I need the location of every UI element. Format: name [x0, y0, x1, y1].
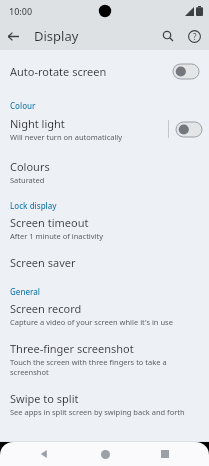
button[interactable]: Search — [155, 23, 181, 49]
staticText: Capture a video of your screen while it'… — [10, 317, 173, 327]
staticText: Swipe to split — [10, 391, 79, 406]
staticText: Saturated — [10, 175, 45, 185]
button[interactable]: Screen saver — [0, 253, 209, 272]
staticText: 10:00 — [9, 5, 33, 17]
staticText: ? — [193, 31, 197, 42]
staticText: Will never turn on automatically — [10, 132, 123, 142]
button[interactable]: Swipe to split — [0, 389, 209, 419]
staticText: Screen record — [10, 301, 82, 316]
button[interactable]: Help — [181, 23, 207, 49]
staticText: Night light — [10, 116, 65, 131]
button[interactable]: Screen timeout — [0, 213, 209, 243]
staticText: Auto-rotate screen — [10, 64, 107, 79]
button[interactable]: Home — [95, 444, 115, 464]
staticText: After 1 minute of inactivity — [10, 231, 104, 241]
staticText: Screen timeout — [10, 215, 89, 230]
staticText: Colours — [10, 159, 50, 174]
staticText: Three-finger screenshot — [10, 341, 134, 356]
staticText: Screen saver — [10, 255, 76, 270]
button[interactable]: Three-finger screenshot — [0, 339, 209, 379]
staticText: Display — [34, 27, 79, 45]
button[interactable]: Auto-rotate screen — [0, 55, 209, 87]
button[interactable]: Screen record — [0, 299, 209, 329]
staticText: Colour — [10, 100, 36, 111]
staticText: See apps in split screen by swiping back… — [10, 407, 185, 417]
button[interactable]: Back — [0, 23, 26, 49]
staticText: Touch the screen with three fingers to t… — [10, 357, 197, 377]
staticText: General — [10, 286, 40, 297]
button[interactable]: Night light toggle — [169, 122, 209, 137]
button[interactable]: Colours — [0, 157, 209, 187]
button[interactable]: Recent apps — [155, 444, 175, 464]
staticText: Lock display — [10, 200, 57, 211]
button[interactable]: Night light — [0, 116, 168, 142]
button[interactable]: Back — [34, 444, 54, 464]
